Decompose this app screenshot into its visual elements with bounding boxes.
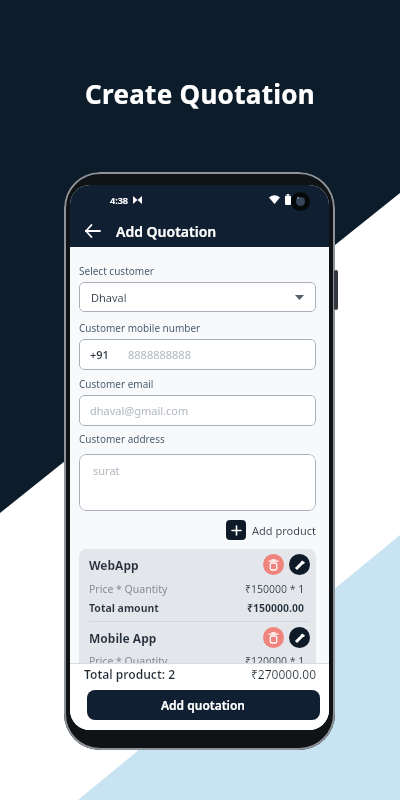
staticText: dhaval@gmail.com [90,403,189,418]
staticText: Add product [252,523,316,538]
button[interactable]: dhaval@gmail.com [90,395,316,426]
button[interactable]: surat [93,463,316,511]
staticText: ₹270000.00 [251,666,316,682]
staticText: Mobile App [89,630,157,646]
staticText: 8888888888 [128,347,191,362]
staticText: Customer mobile number [79,321,201,335]
staticText: Total product: 2 [84,666,176,682]
staticText: Customer address [79,432,165,446]
staticText: Dhaval [91,290,127,305]
button[interactable] [263,627,284,648]
staticText: Price * Quantity [89,654,168,668]
staticText: ₹150000 * 1 [245,582,305,596]
button[interactable] [289,627,310,648]
staticText: Add Quotation [116,222,217,241]
staticText: ₹120000 * 1 [245,654,305,668]
button[interactable]: +91 [90,339,316,370]
staticText: Select customer [79,264,154,278]
button[interactable] [263,554,284,575]
staticText: Total amount [89,601,159,615]
button[interactable] [289,554,310,575]
staticText: Customer email [79,377,154,391]
button[interactable] [81,219,105,243]
button[interactable]: Add quotation [87,690,320,720]
staticText: Create Quotation [85,76,316,111]
staticText: Price * Quantity [89,582,168,596]
button[interactable] [226,520,246,540]
staticText: +91 [90,347,109,362]
staticText: 4:38 [110,194,128,206]
staticText: surat [93,463,120,478]
staticText: WebApp [89,557,139,573]
button[interactable]: Dhaval [91,282,304,312]
staticText: ₹150000.00 [247,601,305,615]
staticText: Add quotation [161,697,246,713]
